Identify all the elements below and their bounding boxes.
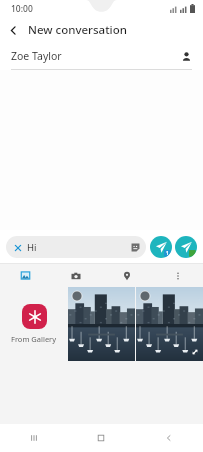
button[interactable]: Recents xyxy=(0,424,67,452)
button[interactable]: Home xyxy=(67,424,135,452)
button[interactable]: Add recipient xyxy=(178,48,194,64)
staticText: Zoe Taylor xyxy=(11,49,178,63)
button[interactable]: Expand xyxy=(189,346,200,357)
button[interactable]: Clear xyxy=(11,241,24,254)
button[interactable]: Camera xyxy=(50,264,101,287)
button[interactable]: Stickers xyxy=(129,241,142,254)
button[interactable]: Clear xyxy=(6,236,146,258)
staticText: 1 xyxy=(166,250,169,256)
button[interactable]: Back xyxy=(0,17,26,43)
button[interactable]: Send chat message xyxy=(175,236,197,258)
staticText: New conversation xyxy=(28,22,127,38)
button[interactable]: More options xyxy=(152,264,203,287)
button[interactable]: Location xyxy=(101,264,152,287)
button[interactable]: Send SMS xyxy=(150,236,172,258)
button[interactable]: Photo xyxy=(136,287,203,361)
staticText: 10:00 xyxy=(11,3,33,15)
button[interactable]: Back xyxy=(135,424,203,452)
button[interactable]: From Gallery xyxy=(0,287,68,361)
staticText: Hi xyxy=(27,241,129,254)
staticText: From Gallery xyxy=(11,334,57,344)
button[interactable]: Photo xyxy=(68,287,135,361)
button[interactable]: Gallery xyxy=(0,264,50,287)
